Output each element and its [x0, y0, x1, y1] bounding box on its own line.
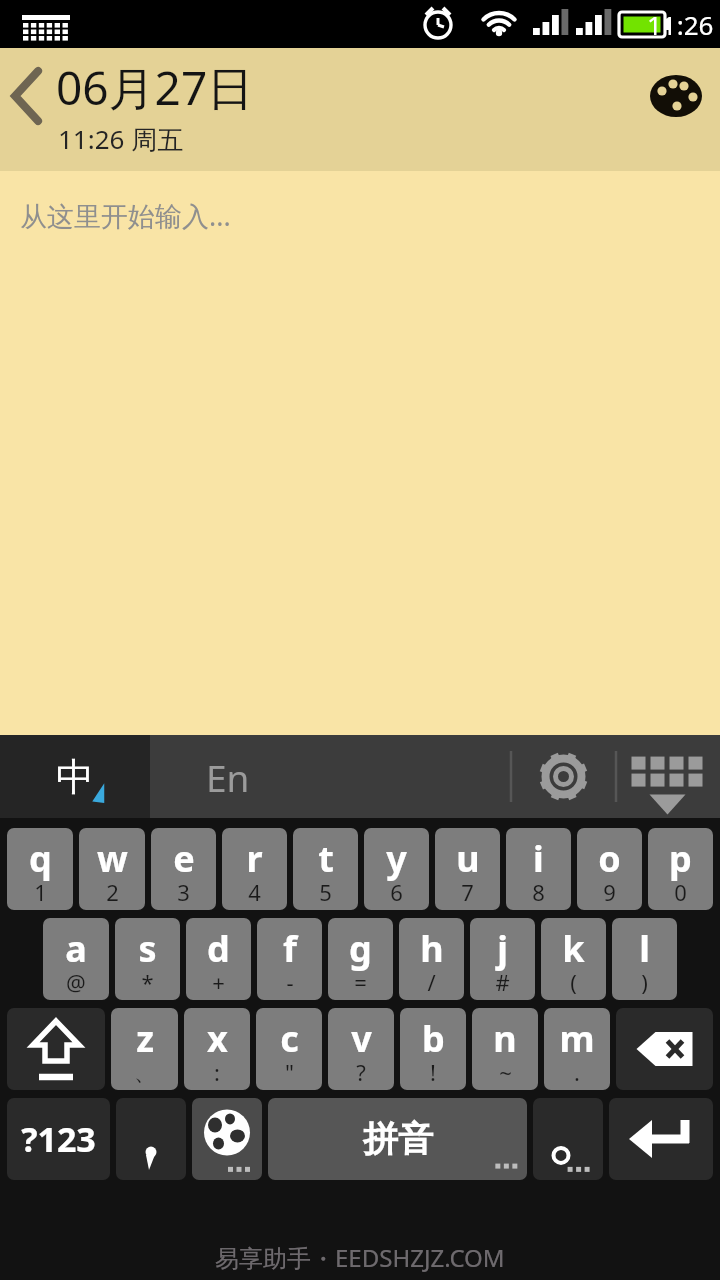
button[interactable]: c	[256, 1008, 322, 1090]
staticText: 2	[106, 877, 119, 907]
staticText: 1	[34, 877, 47, 907]
button[interactable]: s	[115, 918, 180, 1000]
button[interactable]: a	[43, 918, 109, 1000]
button[interactable]: Backspace	[616, 1008, 713, 1090]
button[interactable]: n	[472, 1008, 538, 1090]
staticText: u	[456, 834, 480, 883]
staticText: @	[66, 967, 86, 997]
staticText: 11:26 周五	[58, 121, 184, 157]
staticText: -	[286, 967, 294, 997]
staticText: c	[280, 1014, 299, 1063]
staticText: 3	[177, 877, 190, 907]
button[interactable]: q	[7, 828, 73, 910]
button[interactable]: Switch language	[192, 1098, 262, 1180]
staticText: p	[669, 834, 692, 883]
staticText: 5	[319, 877, 332, 907]
button[interactable]: Change color	[648, 68, 704, 124]
staticText: ~	[499, 1057, 512, 1087]
staticText: q	[29, 834, 52, 883]
staticText: )	[641, 967, 648, 997]
button[interactable]: b	[400, 1008, 466, 1090]
staticText: 易享助手・EEDSHZJZ.COM	[215, 1241, 505, 1274]
staticText: 8	[532, 877, 545, 907]
button[interactable]: k	[541, 918, 606, 1000]
staticText: e	[173, 834, 195, 883]
button[interactable]: Enter	[609, 1098, 713, 1180]
staticText: 6	[390, 877, 403, 907]
button[interactable]: h	[399, 918, 464, 1000]
button[interactable]: Hide keyboard	[615, 735, 720, 818]
button[interactable]: Back	[0, 48, 56, 171]
button[interactable]: j	[470, 918, 535, 1000]
staticText: 0	[674, 877, 687, 907]
staticText: x	[207, 1014, 228, 1063]
button[interactable]: u	[435, 828, 500, 910]
staticText: w	[97, 834, 128, 883]
staticText: m	[559, 1014, 595, 1063]
staticText: /	[427, 967, 436, 997]
staticText: h	[420, 924, 444, 973]
button[interactable]: l	[612, 918, 677, 1000]
staticText: o	[598, 834, 621, 883]
button[interactable]: 从这里开始输入...	[0, 171, 720, 735]
button[interactable]: ?123	[7, 1098, 110, 1180]
button[interactable]: z	[111, 1008, 178, 1090]
button[interactable]: i	[506, 828, 571, 910]
button[interactable]: o	[577, 828, 642, 910]
button[interactable]: Comma	[116, 1098, 186, 1180]
staticText: a	[65, 924, 87, 973]
staticText: +	[212, 967, 225, 997]
button[interactable]: Settings	[512, 735, 615, 818]
staticText: r	[246, 834, 263, 883]
button[interactable]: w	[79, 828, 145, 910]
staticText: 06月27日	[56, 56, 254, 119]
staticText: 4	[248, 877, 261, 907]
button[interactable]: y	[364, 828, 429, 910]
staticText: 9	[603, 877, 616, 907]
button[interactable]: v	[328, 1008, 394, 1090]
button[interactable]: t	[293, 828, 358, 910]
staticText: t	[318, 834, 334, 883]
staticText: 拼音	[363, 1117, 433, 1161]
button[interactable]: Shift	[7, 1008, 105, 1090]
staticText: ?	[356, 1057, 366, 1087]
staticText: j	[497, 924, 508, 973]
button[interactable]: p	[648, 828, 713, 910]
staticText: 从这里开始输入...	[20, 197, 231, 234]
staticText: k	[562, 924, 585, 973]
staticText: g	[349, 924, 372, 973]
staticText: d	[207, 924, 230, 973]
staticText: v	[351, 1014, 372, 1063]
button[interactable]: f	[257, 918, 322, 1000]
staticText: b	[422, 1014, 445, 1063]
staticText: .	[574, 1057, 580, 1087]
button[interactable]: e	[151, 828, 216, 910]
staticText: 11:26	[647, 7, 714, 42]
staticText: s	[138, 924, 157, 973]
staticText: *	[141, 967, 154, 997]
button[interactable]: Space	[268, 1098, 527, 1180]
staticText: z	[136, 1014, 154, 1063]
staticText: n	[493, 1014, 517, 1063]
staticText: "	[285, 1057, 294, 1087]
button[interactable]: m	[544, 1008, 610, 1090]
staticText: (	[570, 967, 577, 997]
staticText: :	[214, 1057, 220, 1087]
button[interactable]: x	[184, 1008, 250, 1090]
button[interactable]: d	[186, 918, 251, 1000]
staticText: i	[533, 834, 544, 883]
button[interactable]: Period	[533, 1098, 603, 1180]
button[interactable]: 中	[0, 735, 150, 818]
staticText: 、	[134, 1059, 156, 1087]
staticText: En	[206, 752, 250, 802]
staticText: ?123	[21, 1116, 96, 1162]
staticText: 7	[461, 877, 474, 907]
button[interactable]: r	[222, 828, 287, 910]
button[interactable]: g	[328, 918, 393, 1000]
staticText: l	[639, 924, 650, 973]
button[interactable]: En	[150, 735, 510, 818]
staticText: y	[386, 834, 407, 883]
staticText: 中	[56, 753, 94, 801]
staticText: =	[354, 967, 367, 997]
staticText: #	[495, 967, 510, 997]
